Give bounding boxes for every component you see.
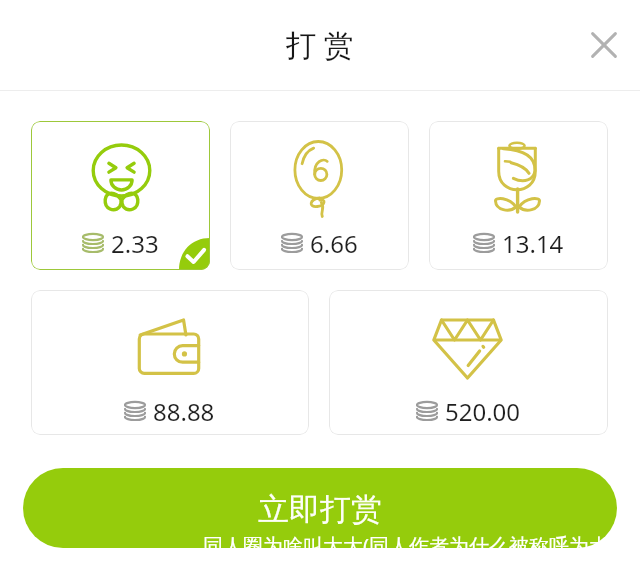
staticText: 88.88: [153, 395, 215, 428]
button[interactable]: 88.88: [31, 290, 309, 435]
button[interactable]: 6.66: [230, 121, 409, 270]
staticText: 6.66: [310, 227, 358, 260]
staticText: 打 赏: [286, 24, 354, 65]
staticText: 2.33: [111, 227, 159, 260]
staticText: 13.14: [502, 227, 564, 260]
button[interactable]: 立即打赏: [23, 468, 617, 548]
button[interactable]: 13.14: [429, 121, 608, 270]
button[interactable]: 520.00: [329, 290, 608, 435]
staticText: 520.00: [445, 395, 521, 428]
button[interactable]: 2.33: [31, 121, 210, 270]
button[interactable]: Close: [580, 21, 628, 69]
staticText: 立即打赏: [258, 490, 382, 529]
staticText: 同人圈为啥叫大大(同人作者为什么被称呼为大: [203, 532, 609, 559]
